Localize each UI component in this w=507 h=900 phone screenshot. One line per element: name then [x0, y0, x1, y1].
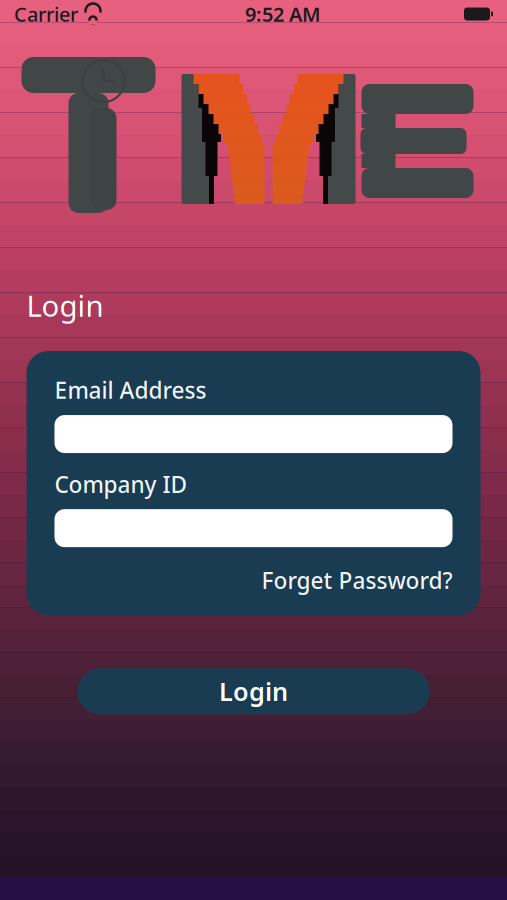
staticText: 9:52 AM	[245, 1, 321, 27]
staticText: Forget Password?	[261, 565, 452, 595]
staticText: Login	[219, 674, 288, 708]
button[interactable]: Email Address field	[54, 415, 452, 453]
button[interactable]: Company ID field	[54, 509, 452, 547]
staticText: Carrier	[14, 1, 78, 27]
staticText: Login	[26, 286, 103, 325]
staticText: Email Address	[54, 375, 206, 405]
staticText: Company ID	[54, 469, 187, 499]
button[interactable]: Forget Password?	[261, 565, 452, 595]
button[interactable]: Login	[77, 668, 429, 714]
